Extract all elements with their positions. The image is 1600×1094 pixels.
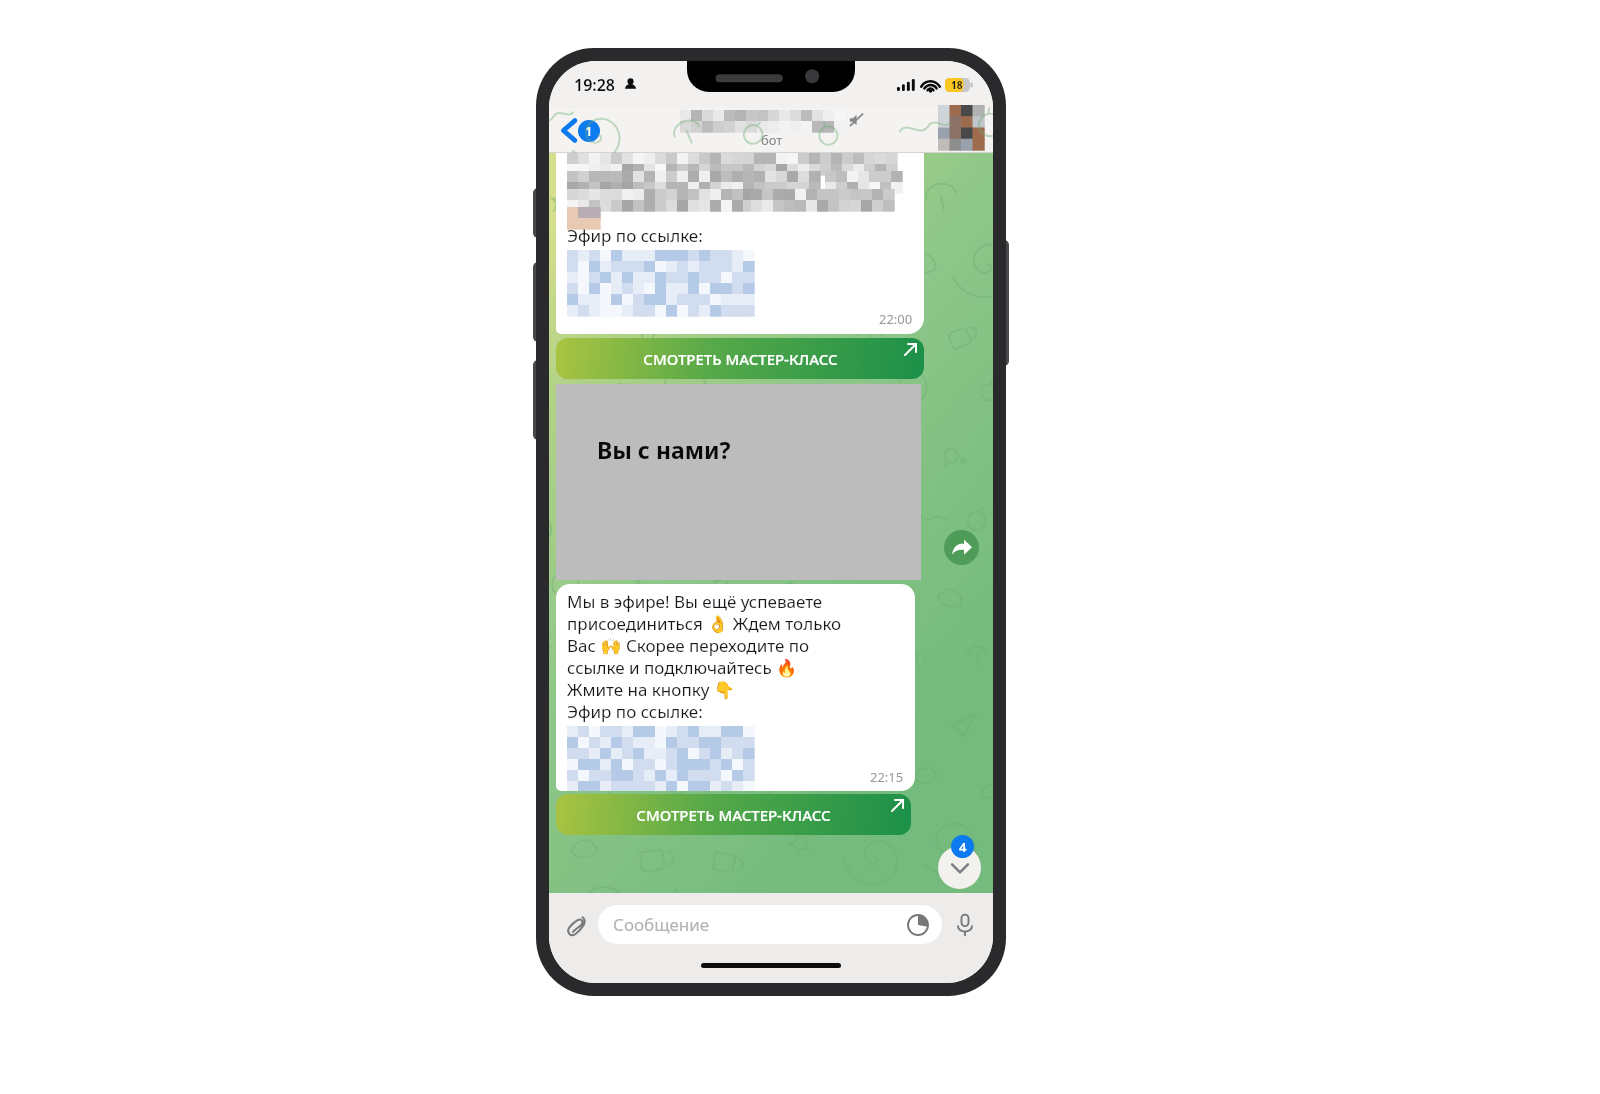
button[interactable]: Stickers: [904, 911, 931, 938]
staticText: Эфир по ссылке:: [567, 224, 703, 247]
staticText: Мы в эфире! Вы ещё успеваете присоединит…: [567, 590, 842, 723]
button[interactable]: Attach file: [558, 906, 596, 944]
staticText: СМОТРЕТЬ МАСТЕР-КЛАСС: [636, 805, 831, 825]
button[interactable]: Back: [556, 115, 606, 146]
button[interactable]: Record voice message: [946, 906, 984, 944]
button[interactable]: Forward: [944, 530, 979, 565]
staticText: 1: [585, 122, 593, 140]
button[interactable]: Сообщение: [598, 905, 942, 944]
staticText: бот: [761, 131, 783, 149]
staticText: 19:28: [574, 74, 616, 96]
button[interactable]: СМОТРЕТЬ МАСТЕР-КЛАСС: [556, 338, 924, 379]
button[interactable]: Эфир по ссылке:: [556, 153, 924, 334]
staticText: 4: [959, 838, 967, 856]
staticText: 22:00: [879, 310, 913, 328]
button[interactable]: Profile photo: [938, 105, 984, 150]
button[interactable]: СМОТРЕТЬ МАСТЕР-КЛАСС: [556, 794, 911, 835]
button[interactable]: Вы с нами?: [556, 384, 921, 580]
button[interactable]: Scroll to bottom: [938, 846, 981, 889]
staticText: 18: [951, 78, 963, 92]
staticText: Вы с нами?: [597, 434, 731, 465]
staticText: СМОТРЕТЬ МАСТЕР-КЛАСС: [643, 349, 838, 369]
staticText: Сообщение: [613, 913, 710, 936]
staticText: 22:15: [870, 768, 904, 786]
button[interactable]: Мы в эфире! Вы ещё успеваете присоединит…: [556, 584, 915, 791]
